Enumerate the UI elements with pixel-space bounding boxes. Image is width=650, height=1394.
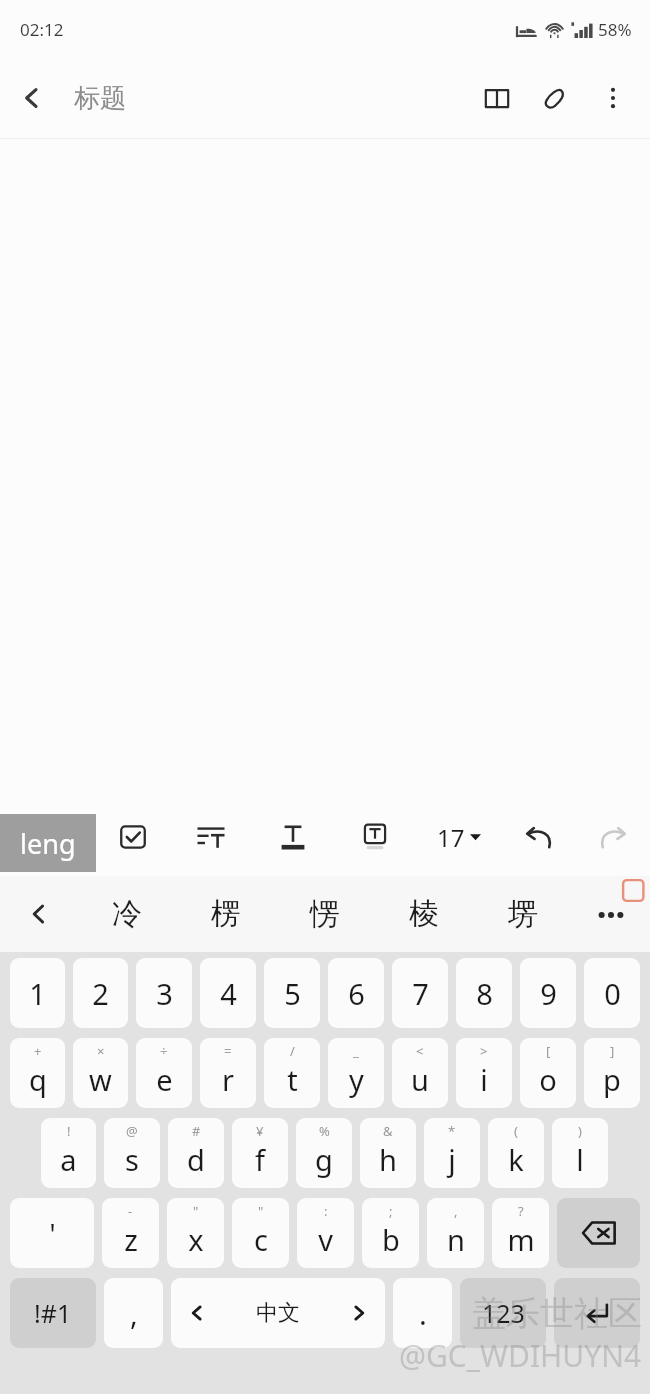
button[interactable]: 9 (520, 958, 576, 1028)
staticText: u (411, 1060, 429, 1099)
staticText: l (576, 1140, 584, 1179)
staticText: 标题 (74, 82, 126, 115)
button[interactable]: Attach (526, 69, 584, 127)
button[interactable]: 棱 (374, 876, 473, 952)
staticText: 5 (284, 974, 301, 1013)
button[interactable]: = (200, 1038, 256, 1108)
staticText: × (97, 1042, 105, 1060)
staticText: [ (546, 1042, 551, 1060)
button[interactable]: × (73, 1038, 128, 1108)
button[interactable]: ; (362, 1198, 419, 1268)
button[interactable]: ] (584, 1038, 640, 1108)
button[interactable]: Symbols (10, 1278, 96, 1348)
staticText: q (29, 1060, 47, 1099)
staticText: 棱 (409, 895, 439, 933)
button[interactable]: Handwriting (0, 798, 96, 876)
button[interactable]: # (168, 1118, 224, 1188)
staticText: 2 (92, 974, 109, 1013)
button[interactable]: Back (0, 66, 64, 130)
button[interactable]: More candidates (572, 876, 650, 952)
button[interactable]: Paragraph style (170, 798, 252, 876)
button[interactable]: @ (104, 1118, 160, 1188)
staticText: 3 (156, 974, 173, 1013)
staticText: 8 (476, 974, 493, 1013)
staticText: 123 (482, 1296, 525, 1330)
button[interactable]: Space, Chinese (171, 1278, 385, 1348)
button[interactable]: < (392, 1038, 448, 1108)
button[interactable]: , (427, 1198, 484, 1268)
staticText: w (89, 1060, 112, 1099)
button[interactable]: . (393, 1278, 452, 1348)
button[interactable]: Checklist (96, 798, 170, 876)
button[interactable]: [ (520, 1038, 576, 1108)
button[interactable]: " (232, 1198, 289, 1268)
staticText: * (448, 1122, 456, 1140)
button[interactable]: 塄 (473, 876, 572, 952)
staticText: p (603, 1060, 621, 1099)
button[interactable]: Undo (502, 798, 576, 876)
button[interactable]: Text box (334, 798, 416, 876)
button[interactable]: Previous (0, 876, 78, 952)
button[interactable]: Numbers (460, 1278, 546, 1348)
staticText: z (124, 1220, 138, 1259)
button[interactable]: : (297, 1198, 354, 1268)
button[interactable]: Reading mode (468, 69, 526, 127)
staticText: 02:12 (20, 18, 64, 41)
staticText: t (287, 1060, 298, 1099)
staticText: 9 (540, 974, 557, 1013)
staticText: j (448, 1140, 456, 1179)
staticText: 0 (604, 974, 621, 1013)
button[interactable]: Backspace (557, 1198, 640, 1268)
staticText: , (454, 1202, 458, 1220)
button[interactable]: / (264, 1038, 320, 1108)
button[interactable]: , (104, 1278, 163, 1348)
button[interactable]: 2 (73, 958, 128, 1028)
button[interactable]: ( (488, 1118, 544, 1188)
button[interactable]: * (424, 1118, 480, 1188)
button[interactable]: 愣 (275, 876, 374, 952)
button[interactable]: > (456, 1038, 512, 1108)
button[interactable]: 4 (200, 958, 256, 1028)
button[interactable]: Redo (576, 798, 650, 876)
button[interactable]: 冷 (78, 876, 176, 952)
button[interactable]: More options (584, 69, 642, 127)
button[interactable]: + (10, 1038, 65, 1108)
button[interactable]: - (102, 1198, 159, 1268)
staticText: @GC_WDIHUYN4 (399, 1335, 642, 1376)
staticText: = (224, 1042, 232, 1060)
staticText: + (34, 1042, 42, 1060)
staticText: 58% (598, 18, 632, 41)
button[interactable]: 8 (456, 958, 512, 1028)
staticText: ? (518, 1202, 524, 1220)
staticText: % (319, 1122, 330, 1140)
button[interactable]: ? (492, 1198, 549, 1268)
staticText: @ (126, 1122, 138, 1140)
button[interactable]: 1 (10, 958, 65, 1028)
button[interactable]: ' (10, 1198, 94, 1268)
button[interactable]: % (296, 1118, 352, 1188)
button[interactable]: ¥ (232, 1118, 288, 1188)
button[interactable]: 7 (392, 958, 448, 1028)
staticText: ; (389, 1202, 393, 1220)
button[interactable]: " (167, 1198, 224, 1268)
button[interactable]: ! (41, 1118, 96, 1188)
staticText: . (419, 1294, 427, 1333)
button[interactable]: Text format (252, 798, 334, 876)
button[interactable]: & (360, 1118, 416, 1188)
button[interactable]: 3 (136, 958, 192, 1028)
button[interactable]: ) (552, 1118, 608, 1188)
staticText: 楞 (211, 895, 241, 933)
staticText: , (130, 1294, 138, 1333)
button[interactable]: 5 (264, 958, 320, 1028)
staticText: 塄 (508, 895, 538, 933)
button[interactable]: _ (328, 1038, 384, 1108)
button[interactable]: ÷ (136, 1038, 192, 1108)
button[interactable]: Enter (554, 1278, 640, 1348)
staticText: ! (67, 1122, 71, 1140)
button[interactable]: 0 (584, 958, 640, 1028)
button[interactable]: 楞 (176, 876, 275, 952)
staticText: ¥ (256, 1122, 264, 1140)
staticText: a (60, 1140, 77, 1179)
button[interactable]: 17 (416, 798, 502, 876)
button[interactable]: 6 (328, 958, 384, 1028)
